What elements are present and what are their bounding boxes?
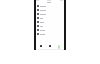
button[interactable]	[36, 4, 64, 8]
button[interactable]	[36, 12, 64, 16]
button[interactable]	[36, 16, 64, 20]
button[interactable]: Profile	[55, 42, 62, 50]
button[interactable]: Search	[46, 42, 53, 50]
button[interactable]	[36, 28, 64, 32]
button[interactable]	[36, 8, 64, 12]
button[interactable]: Home	[37, 42, 44, 50]
button[interactable]	[36, 24, 64, 28]
button[interactable]	[36, 32, 64, 36]
button[interactable]	[36, 20, 64, 24]
